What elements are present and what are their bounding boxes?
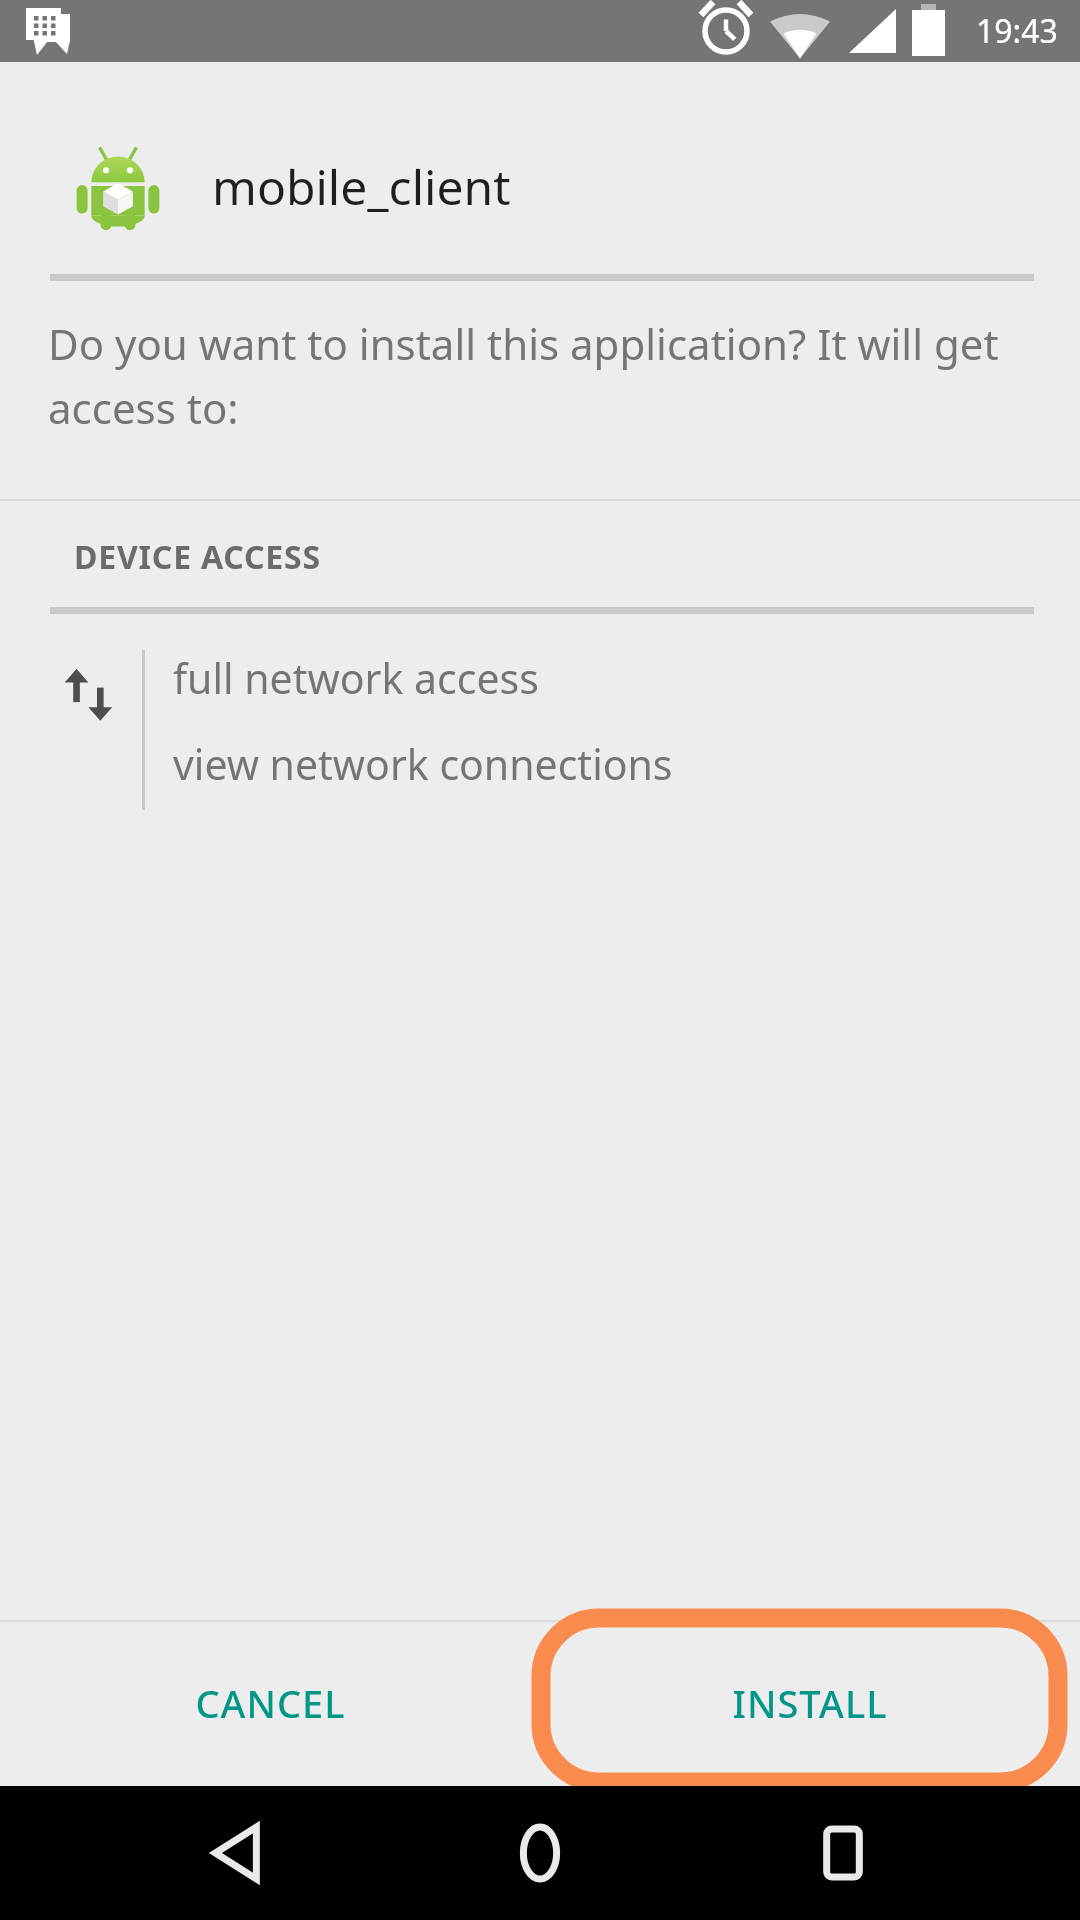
button[interactable]: Home xyxy=(475,1788,605,1918)
button[interactable]: INSTALL xyxy=(540,1620,1080,1786)
staticText: 19:43 xyxy=(976,9,1058,53)
button[interactable]: Back xyxy=(173,1788,303,1918)
staticText: mobile_client xyxy=(212,154,511,219)
staticText: INSTALL xyxy=(732,1677,888,1729)
staticText: Do you want to install this application?… xyxy=(48,315,1040,437)
staticText: CANCEL xyxy=(195,1677,346,1729)
button[interactable]: Recent apps xyxy=(778,1788,908,1918)
staticText: DEVICE ACCESS xyxy=(74,535,321,579)
button[interactable]: CANCEL xyxy=(0,1620,540,1786)
staticText: full network access xyxy=(173,650,539,706)
other: Network access xyxy=(60,668,122,730)
staticText: view network connections xyxy=(173,736,673,792)
